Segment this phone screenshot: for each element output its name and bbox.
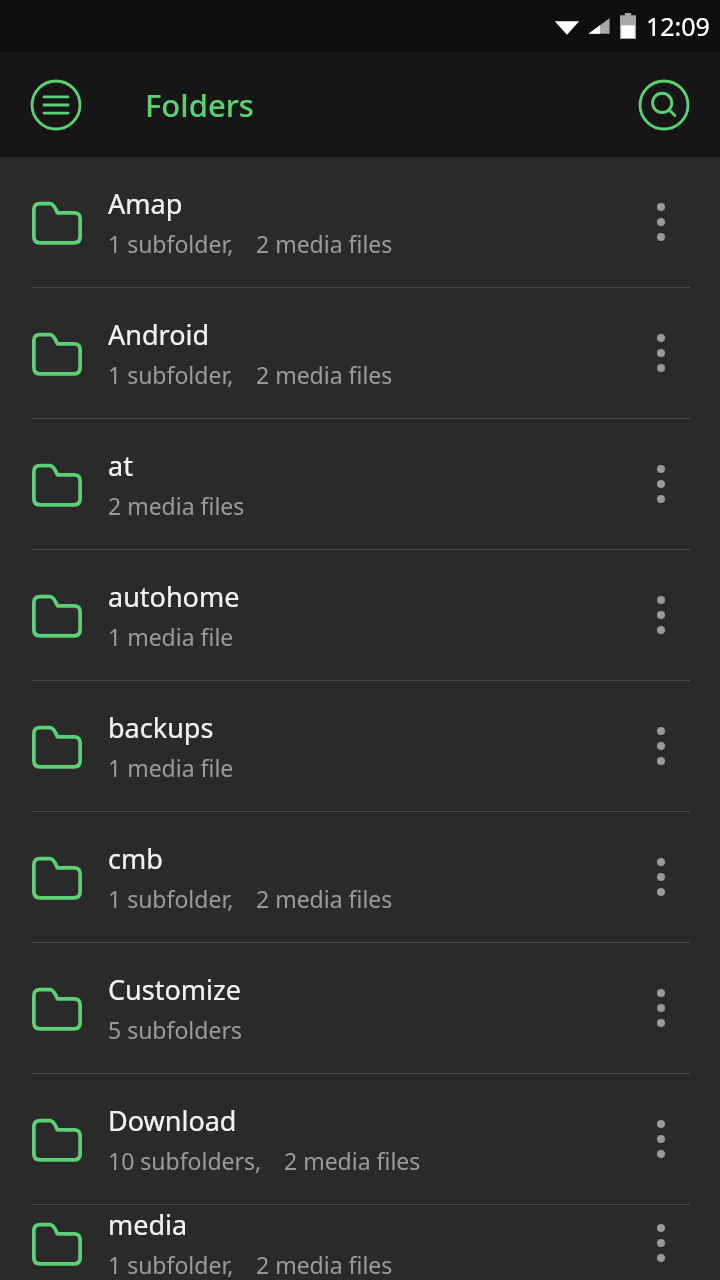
staticText: Customize — [108, 971, 241, 1008]
staticText: media — [108, 1206, 188, 1243]
button[interactable]: Search — [632, 73, 696, 137]
button[interactable]: More options for media — [630, 1205, 692, 1280]
button[interactable]: More options for backups — [630, 681, 692, 811]
button[interactable]: More options for autohome — [630, 550, 692, 680]
staticText: 2 media files — [256, 228, 393, 259]
button[interactable]: autohome — [0, 550, 720, 680]
staticText: 1 media file — [108, 621, 234, 652]
staticText: 1 media file — [108, 752, 234, 783]
button[interactable]: More options for cmb — [630, 812, 692, 942]
staticText: 1 subfolder, — [108, 228, 234, 259]
button[interactable]: Customize — [0, 943, 720, 1073]
button[interactable]: More options for Android — [630, 288, 692, 418]
staticText: Download — [108, 1102, 237, 1139]
staticText: 2 media files — [256, 359, 393, 390]
staticText: backups — [108, 709, 214, 746]
staticText: Amap — [108, 185, 183, 222]
staticText: Android — [108, 316, 210, 353]
button[interactable]: Amap — [0, 157, 720, 287]
button[interactable]: More options for Amap — [630, 157, 692, 287]
staticText: 1 subfolder, — [108, 883, 234, 914]
button[interactable]: backups — [0, 681, 720, 811]
button[interactable]: Download — [0, 1074, 720, 1204]
button[interactable]: More options for at — [630, 419, 692, 549]
staticText: 1 subfolder, — [108, 359, 234, 390]
staticText: Folders — [145, 84, 254, 126]
staticText: 2 media files — [108, 490, 245, 521]
staticText: at — [108, 447, 133, 484]
button[interactable]: Android — [0, 288, 720, 418]
staticText: cmb — [108, 840, 163, 877]
staticText: 2 media files — [284, 1145, 421, 1176]
staticText: 12:09 — [646, 9, 710, 43]
staticText: 2 media files — [256, 1249, 393, 1280]
button[interactable]: cmb — [0, 812, 720, 942]
staticText: 10 subfolders, — [108, 1145, 262, 1176]
button[interactable]: Open navigation menu — [24, 73, 88, 137]
button[interactable]: More options for Customize — [630, 943, 692, 1073]
button[interactable]: at — [0, 419, 720, 549]
staticText: autohome — [108, 578, 240, 615]
staticText: 1 subfolder, — [108, 1249, 234, 1280]
button[interactable]: More options for Download — [630, 1074, 692, 1204]
button[interactable]: media — [0, 1205, 720, 1280]
staticText: 5 subfolders — [108, 1014, 242, 1045]
staticText: 2 media files — [256, 883, 393, 914]
